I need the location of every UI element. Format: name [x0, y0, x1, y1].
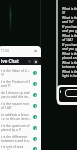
staticText: t is the quantum of placed by a l? [1, 124, 32, 132]
button[interactable]: Open [33, 71, 37, 75]
staticText: What is the quantum of placed and divide… [62, 52, 77, 60]
button[interactable]: t is the Value of 4 + 5? [0, 67, 41, 78]
button[interactable]: ive Chat [1, 57, 38, 65]
button[interactable]: Open [33, 82, 37, 86]
staticText: What is the square root of 144? [62, 34, 77, 42]
staticText: What is the Product of 3 and 7s? [62, 16, 77, 24]
button[interactable]: t is the square root of 144? [0, 100, 41, 111]
staticText: If you have 12 apples and you gained 5 m… [62, 43, 77, 51]
staticText: ive Chat [1, 58, 19, 64]
button[interactable]: Notifications [28, 60, 31, 63]
staticText: If you have 12 apples and you gained 5 m… [62, 25, 77, 33]
button[interactable]: Open [33, 93, 37, 97]
button[interactable]: Profile [33, 59, 38, 64]
button[interactable]: What is the difference between a and b? [62, 60, 77, 69]
button[interactable]: If you have 12 apples and you gained 5 m… [62, 24, 77, 33]
staticText: t is the Value of 4 + 5? [1, 69, 32, 77]
button[interactable]: t is the Product of 3 and 7? [0, 78, 41, 89]
staticText: 11:04 [1, 49, 9, 53]
button[interactable]: Open [33, 126, 37, 130]
staticText: t is the Product of 3 and 7? [1, 80, 32, 88]
staticText: t is unit of area used? [1, 145, 32, 150]
button[interactable]: Open [33, 115, 37, 119]
staticText: What is the difference between a and b? [62, 61, 77, 69]
button[interactable]: t is the quantum of placed by a l? [0, 122, 41, 133]
staticText: What is the Value of 4 + 5? [62, 7, 77, 15]
staticText: t is the square root of 144? [1, 102, 32, 110]
button[interactable]: to add/sub a focus i.e. to this an item … [0, 111, 41, 122]
button[interactable]: Open [33, 104, 37, 108]
button[interactable]: What is the speed of light in km? [62, 69, 77, 78]
button[interactable]: What is the quantum of placed and divide… [62, 51, 77, 60]
button[interactable]: What is the square root of 144? [62, 33, 77, 42]
staticText: t is the difference between a and b and … [1, 135, 32, 143]
button[interactable]: If you have 12 apples and you gained 5 m… [62, 42, 77, 51]
button[interactable]: t is the difference between a and b and … [0, 133, 41, 144]
button[interactable]: What is the Product of 3 and 7s? [62, 15, 77, 24]
button[interactable]: Open [33, 137, 37, 141]
button[interactable]: t is unit of area used? [0, 144, 41, 150]
button[interactable]: Open [33, 147, 37, 150]
staticText: do I choose cjs and you to add this item… [1, 91, 32, 99]
staticText: to add/sub a focus i.e. to this an item … [1, 113, 32, 121]
button[interactable]: What is the Value of 4 + 5? [62, 6, 77, 15]
button[interactable]: do I choose cjs and you to add this item… [0, 89, 41, 100]
staticText: What is the speed of light in km? [62, 70, 77, 78]
